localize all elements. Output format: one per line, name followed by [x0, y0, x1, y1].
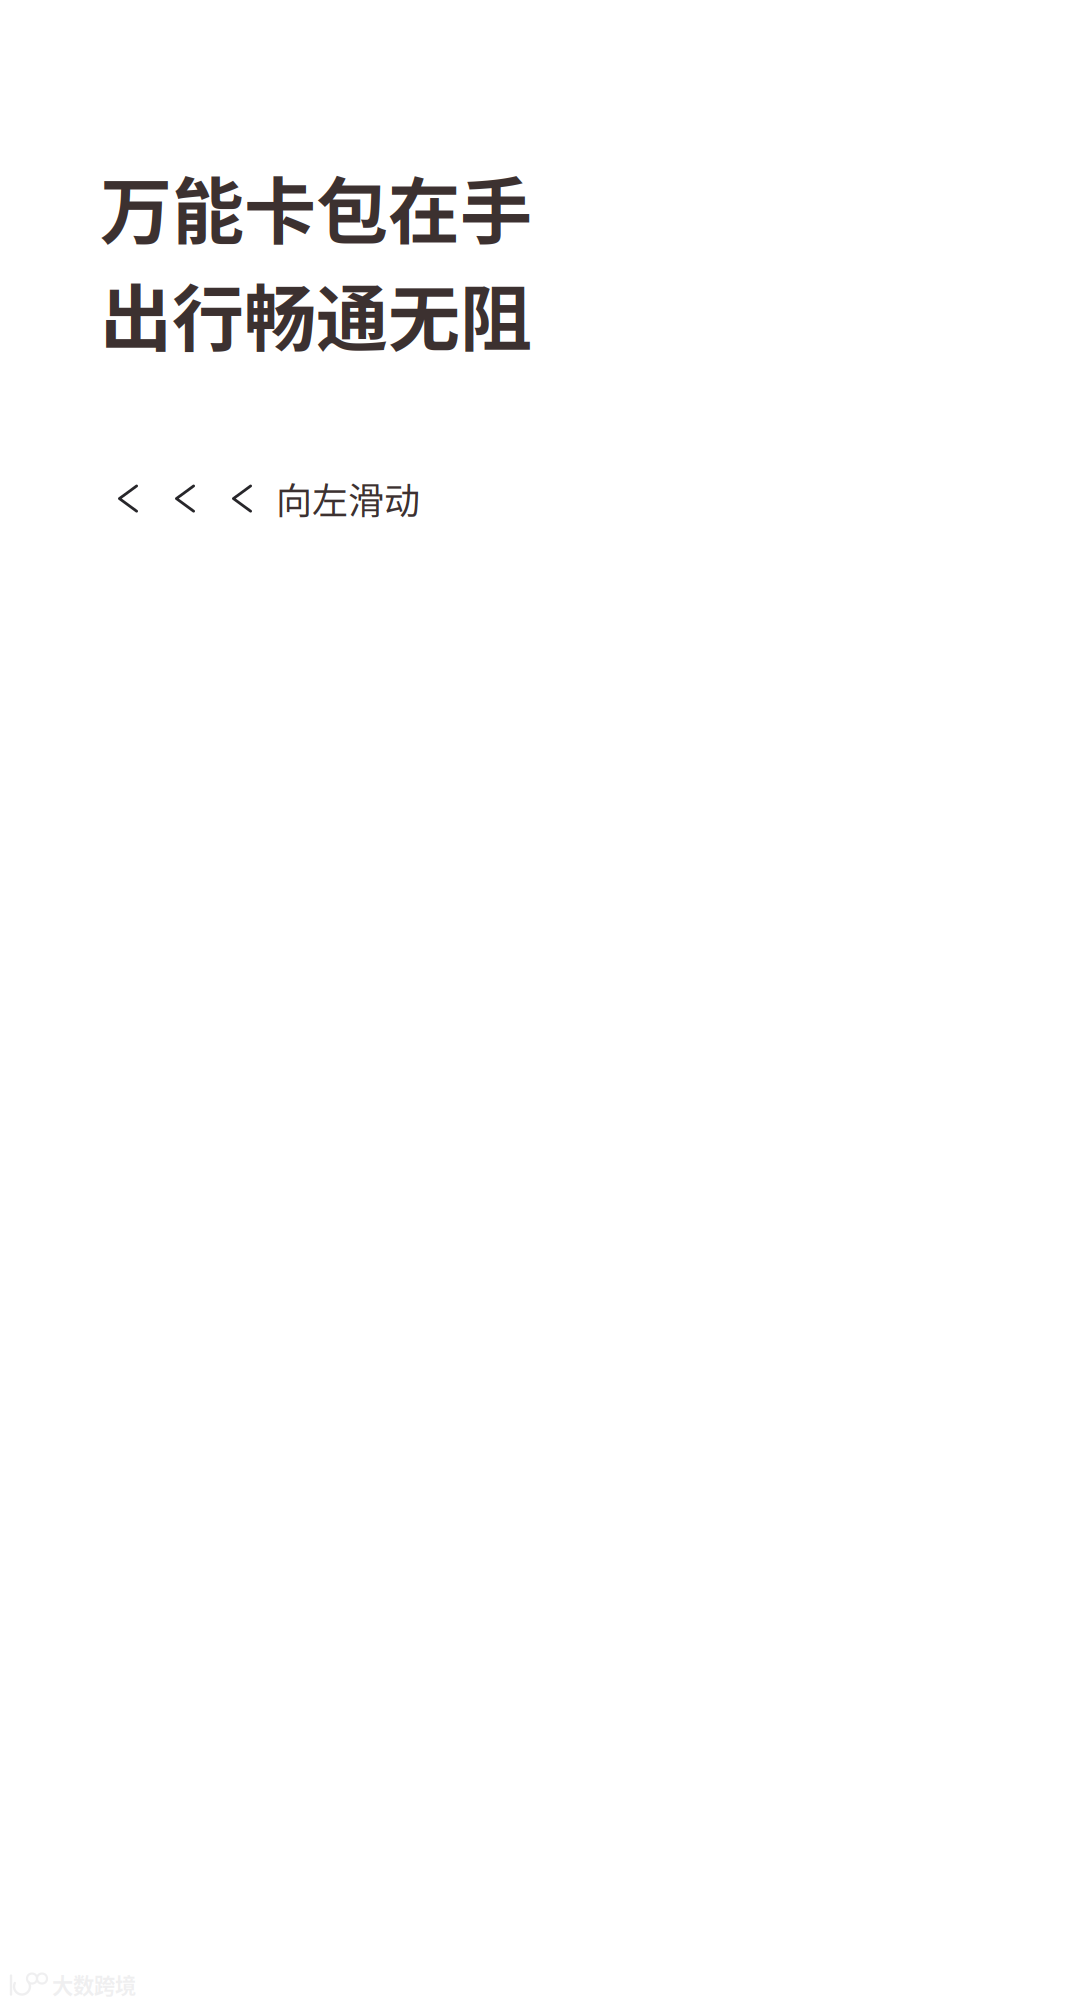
button[interactable]: 向左滑动 — [118, 472, 420, 525]
staticText: 万能卡包在手 — [100, 154, 532, 258]
staticText: 大数跨境 — [52, 1969, 136, 2000]
staticText: 出行畅通无阻 — [100, 261, 532, 366]
staticText: 向左滑动 — [276, 472, 420, 525]
